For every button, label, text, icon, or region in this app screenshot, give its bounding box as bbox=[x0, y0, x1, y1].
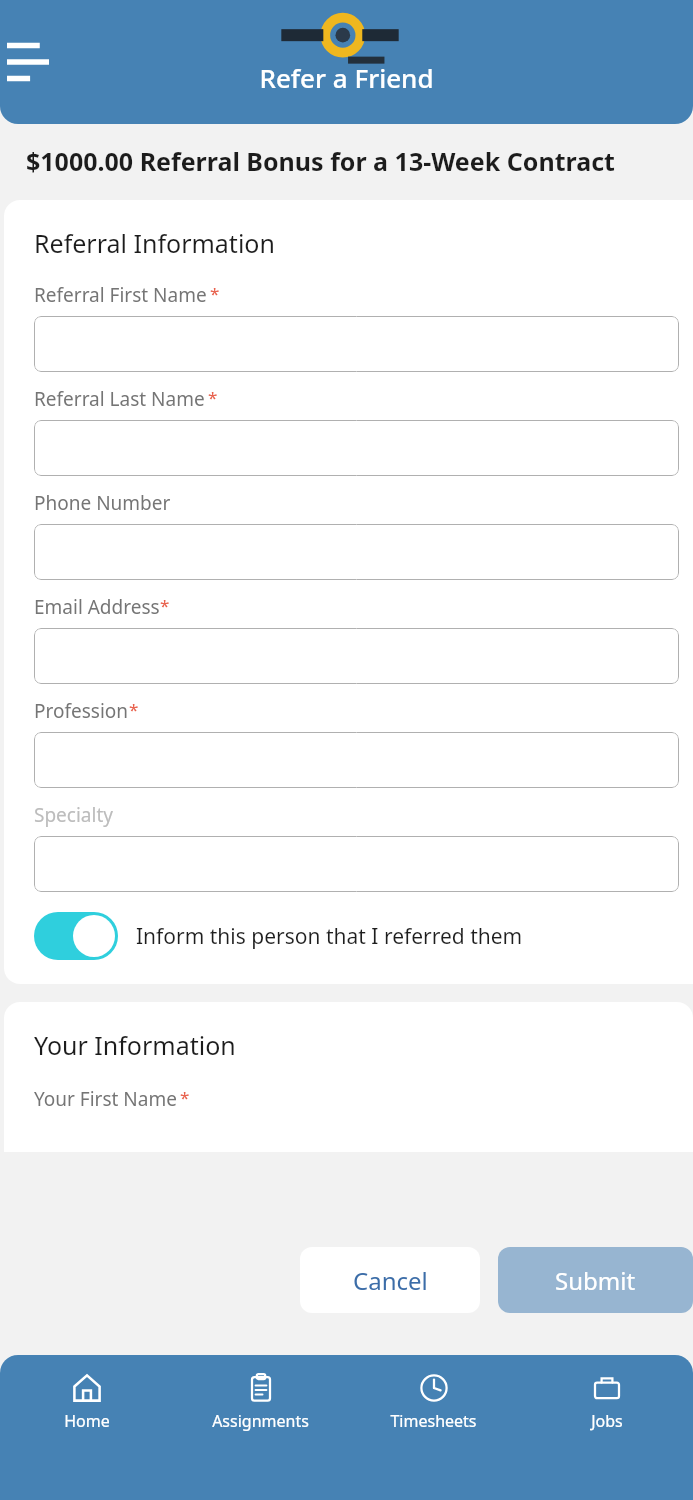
staticText: Email Address bbox=[34, 594, 160, 620]
button[interactable] bbox=[34, 316, 679, 372]
button[interactable] bbox=[34, 420, 679, 476]
staticText: Cancel bbox=[353, 1264, 428, 1297]
staticText: Jobs bbox=[591, 1410, 623, 1432]
staticText: * bbox=[129, 698, 139, 721]
button[interactable]: Inform this person that I referred them bbox=[34, 912, 523, 960]
staticText: Specialty bbox=[34, 802, 113, 828]
staticText: Refer a Friend bbox=[259, 60, 434, 95]
button[interactable]: Home bbox=[0, 1355, 174, 1500]
button[interactable]: Jobs bbox=[520, 1355, 693, 1500]
button[interactable] bbox=[34, 732, 679, 788]
staticText: Your First Name bbox=[34, 1086, 177, 1112]
staticText: Referral Last Name bbox=[34, 386, 205, 412]
staticText: Home bbox=[64, 1410, 110, 1432]
staticText: * bbox=[210, 282, 220, 305]
staticText: Profession bbox=[34, 698, 129, 724]
staticText: Referral Information bbox=[34, 226, 275, 260]
staticText: Inform this person that I referred them bbox=[136, 922, 523, 951]
staticText: Timesheets bbox=[390, 1410, 477, 1432]
staticText: Assignments bbox=[212, 1410, 309, 1432]
button[interactable] bbox=[34, 628, 679, 684]
button[interactable] bbox=[34, 524, 679, 580]
button[interactable]: Cancel bbox=[300, 1247, 480, 1313]
button[interactable] bbox=[34, 836, 679, 892]
button[interactable]: Submit bbox=[498, 1247, 693, 1313]
staticText: Phone Number bbox=[34, 490, 171, 516]
staticText: * bbox=[160, 594, 170, 617]
button[interactable]: Assignments bbox=[174, 1355, 347, 1500]
staticText: Referral First Name bbox=[34, 282, 207, 308]
button[interactable]: Timesheets bbox=[347, 1355, 520, 1500]
staticText: $1000.00 Referral Bonus for a 13-Week Co… bbox=[26, 144, 615, 178]
button[interactable]: Menu bbox=[2, 36, 54, 88]
staticText: * bbox=[180, 1086, 190, 1109]
staticText: * bbox=[208, 386, 218, 409]
staticText: Submit bbox=[555, 1264, 636, 1297]
staticText: Your Information bbox=[34, 1028, 236, 1062]
